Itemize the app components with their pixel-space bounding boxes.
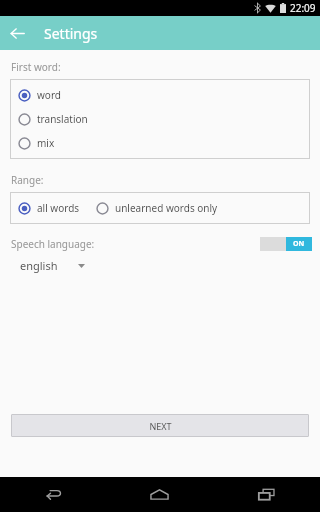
- button[interactable]: Back: [0, 477, 106, 512]
- staticText: translation: [37, 112, 88, 126]
- button[interactable]: Speech toggle: [260, 237, 312, 251]
- staticText: all words: [37, 201, 80, 215]
- staticText: mix: [37, 136, 55, 150]
- button[interactable]: NEXT: [11, 414, 309, 437]
- button[interactable]: all words: [16, 198, 82, 218]
- staticText: unlearned words only: [115, 201, 218, 215]
- staticText: word: [37, 88, 61, 102]
- button[interactable]: translation: [16, 109, 90, 129]
- staticText: First word:: [11, 60, 61, 74]
- staticText: english: [20, 258, 58, 273]
- staticText: ON: [293, 239, 305, 249]
- staticText: Settings: [44, 24, 98, 43]
- staticText: NEXT: [149, 420, 172, 432]
- staticText: Range:: [11, 173, 44, 187]
- button[interactable]: mix: [16, 133, 57, 153]
- button[interactable]: unlearned words only: [94, 198, 220, 218]
- staticText: Speech language:: [11, 237, 95, 251]
- button[interactable]: Back: [0, 16, 34, 50]
- button[interactable]: english: [18, 254, 87, 277]
- button[interactable]: Recent apps: [213, 477, 320, 512]
- button[interactable]: word: [16, 85, 63, 105]
- staticText: 22:09: [290, 1, 316, 15]
- button[interactable]: Home: [106, 477, 213, 512]
